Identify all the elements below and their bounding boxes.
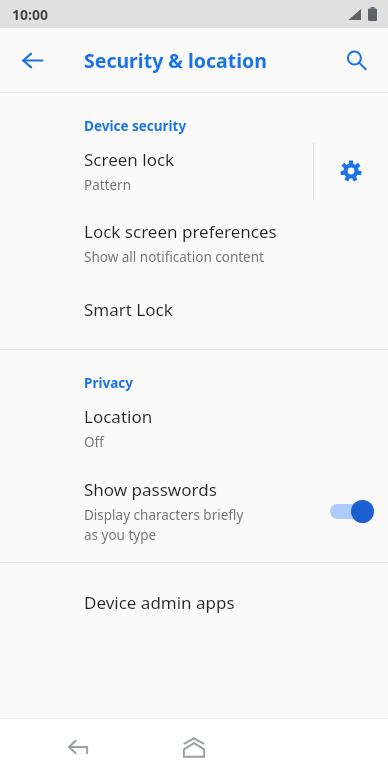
button[interactable]: Lock screen preferences (0, 207, 388, 279)
staticText: Device security (84, 117, 388, 135)
staticText: Privacy (84, 374, 388, 392)
button[interactable]: Smart Lock (0, 279, 388, 339)
button[interactable]: Back (8, 36, 56, 84)
staticText: Pattern (84, 176, 132, 194)
button[interactable]: Show passwords toggle (316, 464, 388, 558)
staticText: Display characters briefly as you type (84, 506, 244, 544)
button[interactable]: Search (332, 36, 380, 84)
staticText: 10:00 (12, 5, 48, 24)
staticText: Security & location (84, 47, 267, 74)
staticText: Device admin apps (84, 591, 235, 614)
staticText: Screen lock (84, 148, 175, 171)
button[interactable]: Location (0, 392, 388, 464)
staticText: Location (84, 405, 153, 428)
button[interactable]: Device admin apps (0, 591, 388, 614)
button[interactable]: Home (170, 724, 218, 772)
button[interactable]: Show passwords (0, 464, 316, 558)
staticText: Show all notification content (84, 248, 264, 266)
staticText: Show passwords (84, 478, 217, 501)
button[interactable]: Screen lock settings (314, 135, 388, 207)
staticText: Off (84, 433, 104, 451)
button[interactable]: Back (54, 724, 102, 772)
button[interactable]: Screen lock (0, 135, 313, 207)
staticText: Lock screen preferences (84, 220, 277, 243)
staticText: Smart Lock (84, 298, 173, 321)
